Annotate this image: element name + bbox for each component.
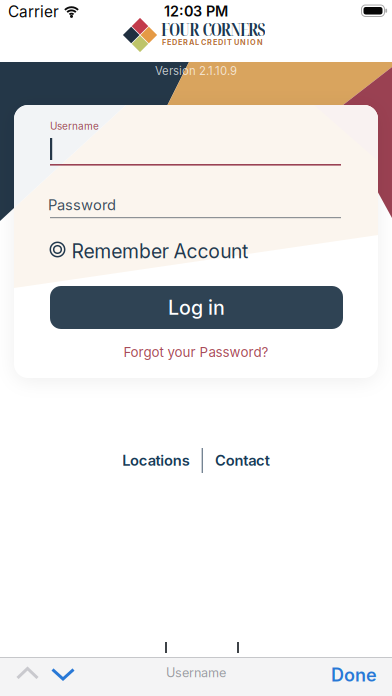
staticText: 12:03 PM [164,2,228,20]
button[interactable]: Remember Account [50,242,254,259]
staticText: Locations [122,452,190,469]
staticText: Username [166,665,226,680]
button[interactable]: Username [48,120,343,167]
staticText: Remember Account [71,239,248,263]
staticText: Log in [168,296,225,319]
button[interactable]: Locations [122,452,190,469]
button[interactable]: Previous field [16,667,39,680]
staticText: Version 2.1.10.9 [155,64,237,78]
staticText: Done [331,664,377,686]
button[interactable]: Forgot your Password? [123,344,268,360]
staticText: Carrier [8,2,59,21]
button[interactable]: Contact [215,452,270,469]
staticText: Contact [215,452,270,469]
button[interactable]: Password [48,196,343,219]
staticText: F E D E R A L C R E D I T U N I O N [162,38,263,47]
button[interactable]: Done [331,664,377,686]
staticText: Password [48,196,116,214]
staticText: Username [50,120,99,132]
button[interactable]: Log in [50,286,343,329]
staticText: Forgot your Password? [123,344,268,360]
button[interactable]: Next field [51,668,75,681]
staticText: FOUR CORNERS [161,17,265,41]
